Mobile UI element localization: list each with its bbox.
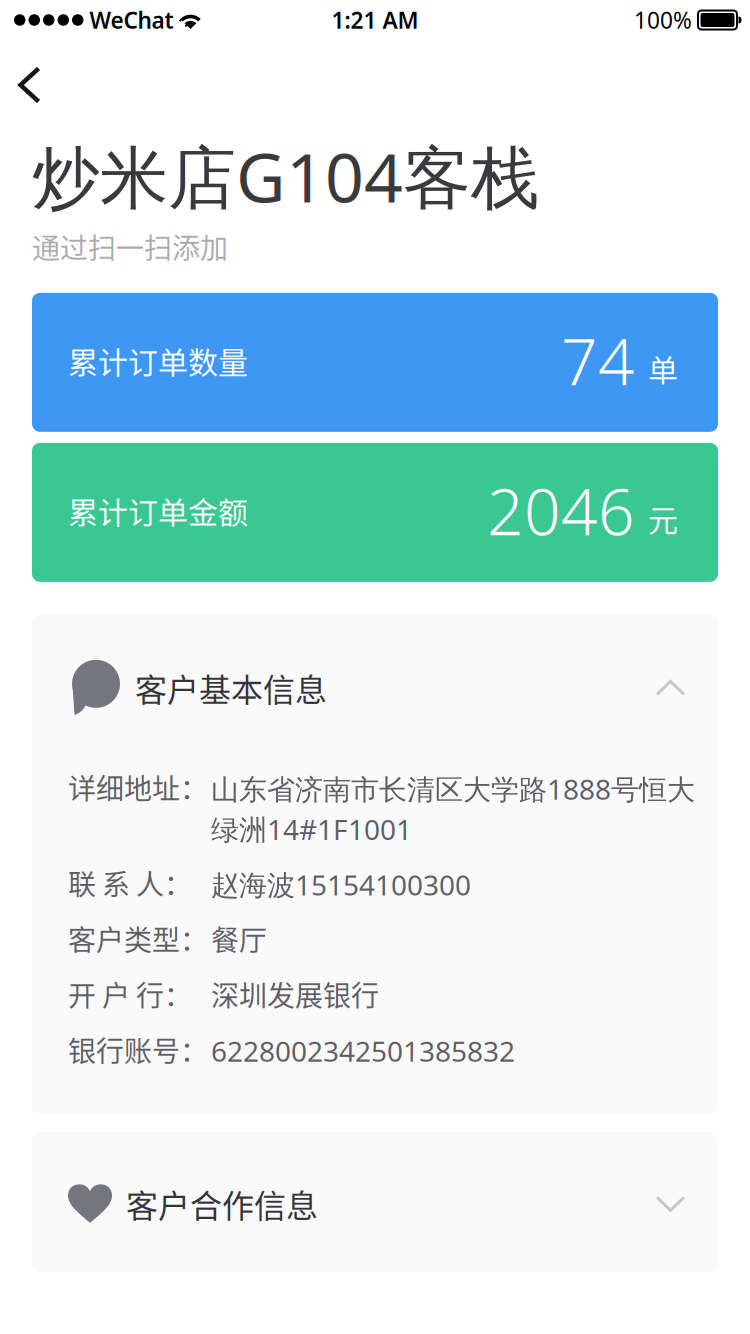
staticText: 客户合作信息 — [126, 1181, 318, 1227]
staticText: 详细地址： — [68, 767, 208, 807]
staticText: 联 系 人： — [68, 863, 192, 903]
staticText: 累计订单金额 — [68, 489, 248, 532]
staticText: 6228002342501385832 — [211, 1032, 515, 1069]
button[interactable]: 客户基本信息 — [32, 615, 718, 716]
staticText: 餐厅 — [211, 918, 267, 959]
button[interactable]: 客户合作信息 — [32, 1132, 718, 1272]
staticText: 通过扫一扫添加 — [32, 226, 228, 267]
staticText: 客户基本信息 — [135, 665, 327, 711]
staticText: 深圳发展银行 — [211, 974, 379, 1014]
staticText: 74 — [561, 318, 635, 403]
staticText: 累计订单数量 — [68, 339, 248, 382]
staticText: 炒米店G104客栈 — [32, 131, 539, 221]
staticText: 赵海波15154100300 — [211, 866, 471, 903]
staticText: 2046 — [487, 468, 635, 553]
staticText: WeChat — [89, 5, 173, 35]
staticText: 绿洲14#1F1001 — [211, 810, 412, 848]
staticText: 开 户 行： — [68, 974, 192, 1014]
staticText: 客户类型： — [68, 918, 208, 959]
staticText: 银行账号： — [68, 1029, 208, 1070]
staticText: 100% — [634, 5, 692, 35]
staticText: 山东省济南市长清区大学路1888号恒大 — [211, 770, 695, 807]
staticText: 单 — [648, 346, 678, 390]
staticText: 1:21 AM — [331, 5, 418, 35]
staticText: 元 — [648, 496, 678, 540]
button[interactable]: Back — [18, 66, 41, 104]
